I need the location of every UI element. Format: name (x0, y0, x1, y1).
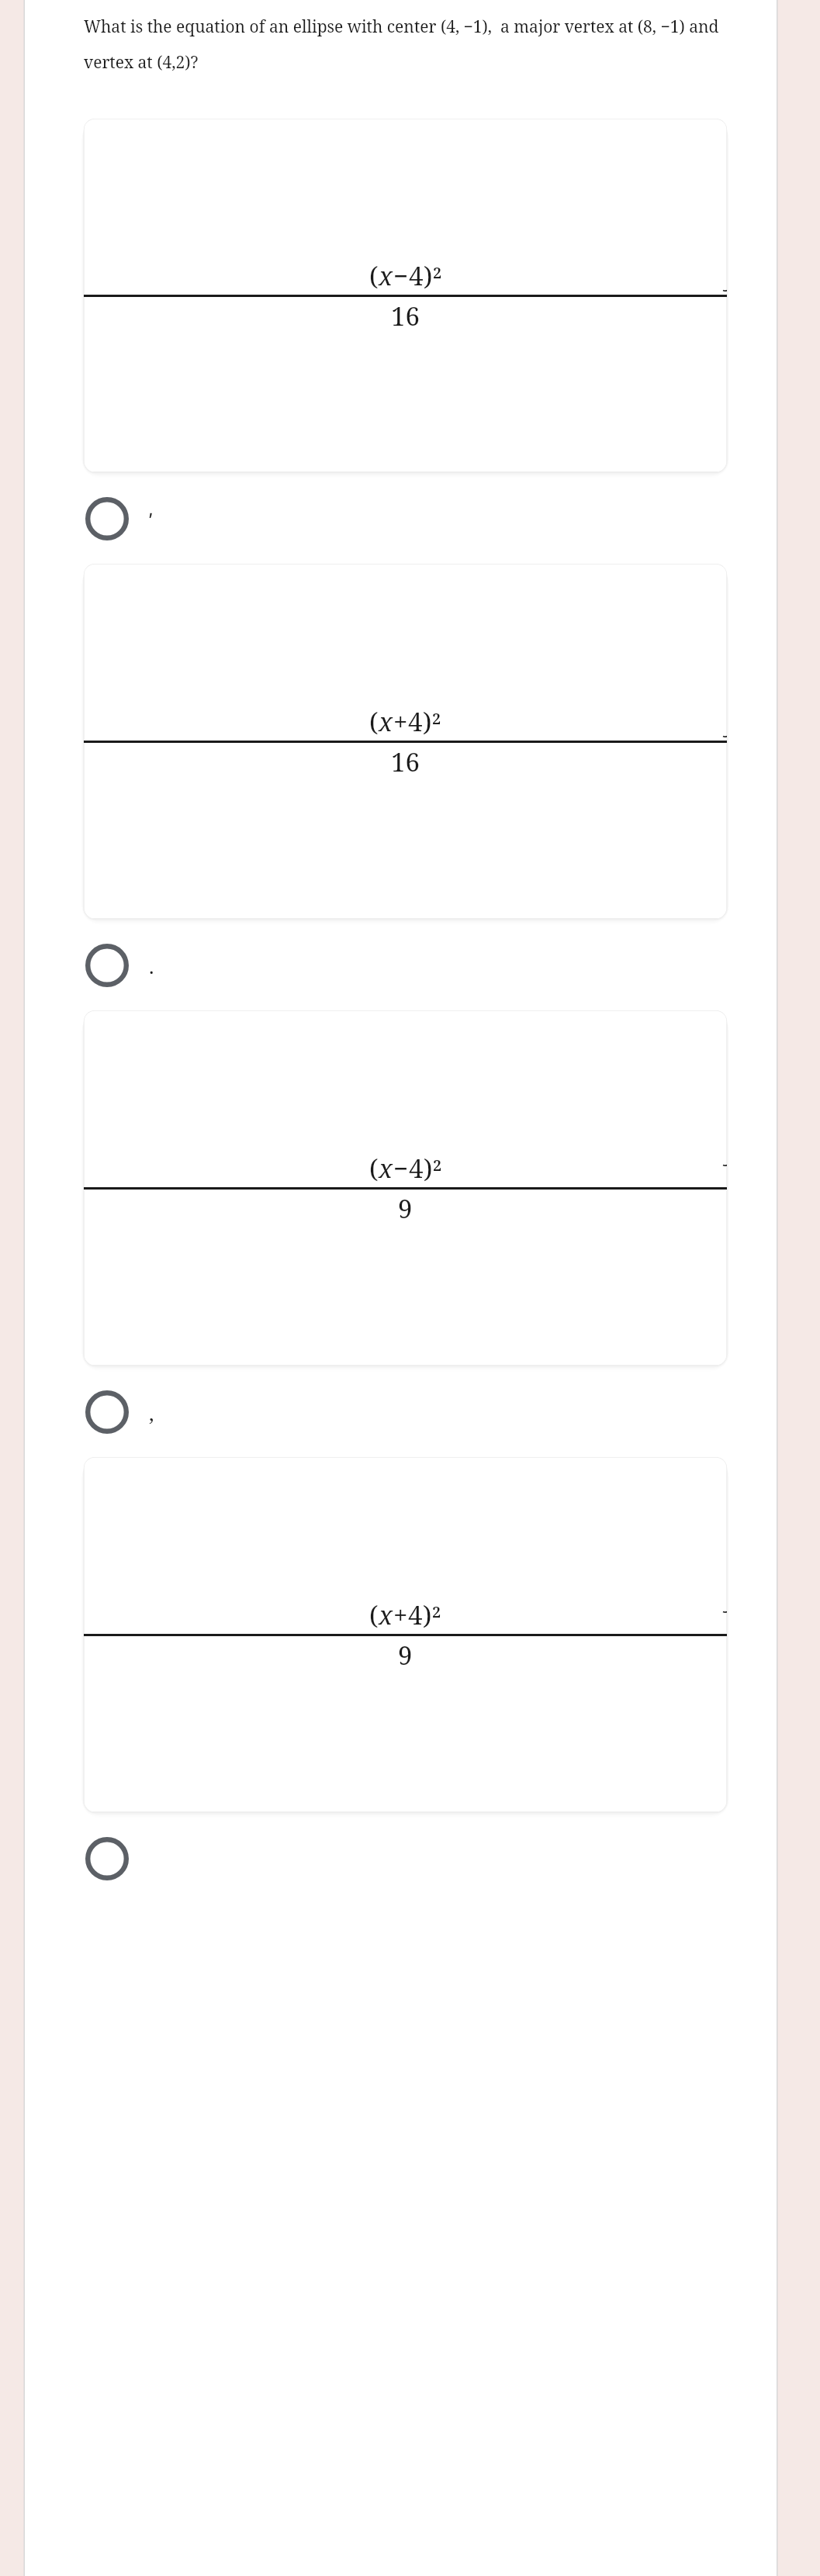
staticText: + (393, 1597, 408, 1632)
staticText: − (393, 1151, 409, 1186)
staticText: x (379, 704, 393, 739)
staticText: ) (423, 704, 432, 739)
staticText: 2 (432, 1601, 441, 1622)
staticText: 4 (408, 1597, 423, 1632)
staticText: 9 (398, 1638, 413, 1673)
staticText: x (379, 1597, 393, 1632)
staticText: 4 (408, 704, 423, 739)
staticText: 4 (409, 1151, 424, 1186)
staticText: ( (369, 1151, 379, 1186)
staticText: 4 (409, 258, 424, 293)
staticText: 16 (391, 299, 420, 333)
staticText: x (379, 1151, 393, 1186)
staticText: 9 (398, 1191, 413, 1226)
staticText: vertex at (4,2)? (84, 51, 199, 74)
staticText: , (149, 1399, 154, 1426)
button[interactable]: ( (84, 1457, 727, 1812)
button[interactable]: ( (84, 1010, 727, 1366)
staticText: + (393, 704, 408, 739)
staticText: 2 (433, 1155, 442, 1176)
staticText: ( (369, 1597, 379, 1632)
staticText: 16 (391, 744, 420, 779)
staticText: ) (424, 258, 433, 293)
staticText: ( (369, 258, 379, 293)
staticText: ) (424, 1151, 433, 1186)
button[interactable]: Answer option A (84, 496, 727, 542)
staticText: 2 (433, 262, 442, 283)
staticText: x (379, 258, 393, 293)
button[interactable]: Answer option B (84, 942, 727, 989)
staticText: What is the equation of an ellipse with … (84, 16, 727, 38)
staticText: ( (369, 704, 379, 739)
button[interactable]: ( (84, 564, 727, 919)
staticText: 2 (432, 708, 441, 729)
staticText: ) (423, 1597, 432, 1632)
button[interactable]: ( (84, 119, 727, 472)
staticText: ʹ (149, 506, 153, 533)
button[interactable]: Answer option C (84, 1389, 727, 1435)
staticText: − (393, 258, 409, 293)
staticText: . (149, 952, 154, 979)
button[interactable]: Answer option D (84, 1835, 727, 1882)
